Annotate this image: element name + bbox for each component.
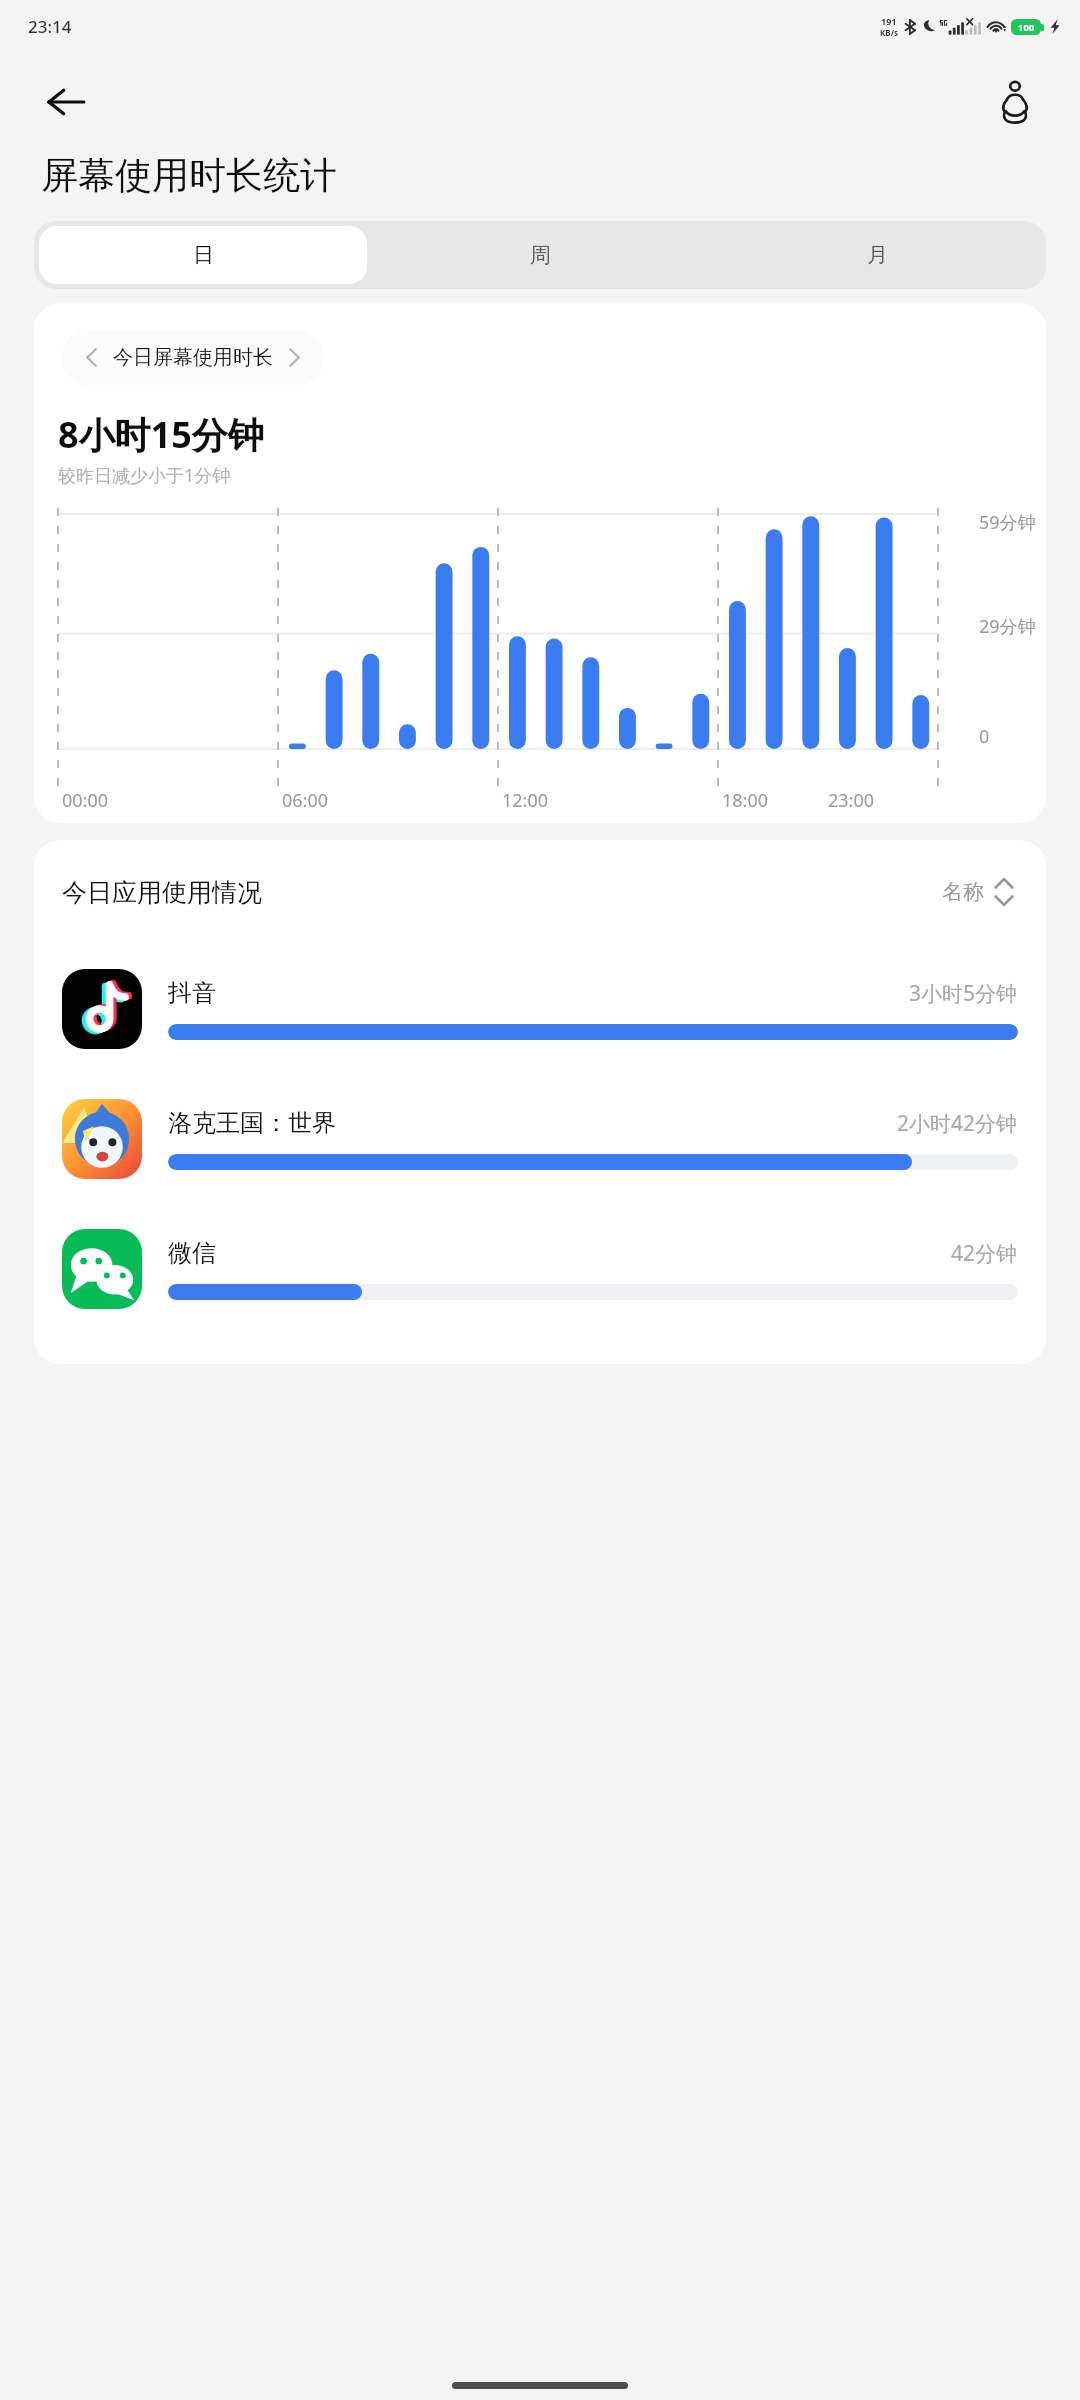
staticText: 42分钟 [951,1239,1018,1268]
button[interactable]: 周 [377,226,704,284]
staticText: 0 [979,724,990,749]
button[interactable]: 月 [714,226,1041,284]
button[interactable]: 日 [39,226,367,284]
button[interactable]: Back [36,72,96,132]
staticText: 12:00 [502,788,549,813]
staticText: 月 [867,242,888,268]
staticText: 59分钟 [979,510,1036,535]
staticText: 100 [1018,21,1035,34]
staticText: KB/s [880,27,898,38]
staticText: 29分钟 [979,614,1036,639]
staticText: 今日屏幕使用时长 [113,345,273,370]
staticText: 较昨日减少小于1分钟 [58,463,231,488]
staticText: 23:00 [828,788,875,813]
button[interactable]: 微信 [34,1204,1046,1334]
button[interactable]: Focus mode [984,71,1046,133]
staticText: 06:00 [282,788,329,813]
staticText: 2小时42分钟 [897,1109,1018,1138]
button[interactable]: 今日屏幕使用时长 [62,329,324,386]
staticText: 日 [193,242,214,268]
staticText: 洛克王国：世界 [168,1108,336,1138]
staticText: 18:00 [722,788,769,813]
staticText: 周 [530,242,551,268]
staticText: 微信 [168,1238,216,1268]
staticText: 23:14 [28,15,72,38]
staticText: 抖音 [168,978,216,1008]
button[interactable]: 名称 [938,874,1018,910]
staticText: 00:00 [62,788,109,813]
staticText: 191 [881,15,897,27]
button[interactable]: 抖音 [34,944,1046,1074]
staticText: 今日应用使用情况 [62,877,262,908]
staticText: 8小时15分钟 [58,410,264,459]
staticText: 3小时5分钟 [909,979,1018,1008]
button[interactable]: 洛克王国：世界 [34,1074,1046,1204]
staticText: 屏幕使用时长统计 [41,152,337,199]
staticText: 名称 [942,879,984,905]
